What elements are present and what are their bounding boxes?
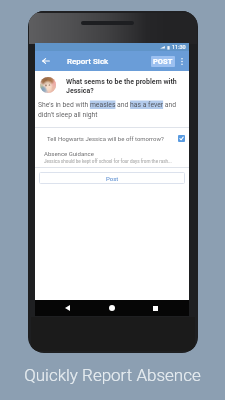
button[interactable]: Post [39, 172, 185, 184]
staticText: Tell Hogwarts Jessica will be off tomorr… [47, 135, 164, 142]
button[interactable]: POST [151, 56, 175, 67]
staticText: POST [153, 57, 173, 66]
staticText: 11:30 [172, 44, 186, 50]
button[interactable]: More options [175, 55, 188, 68]
staticText: Quickly Report Absence [24, 365, 201, 385]
button[interactable]: Back [60, 301, 74, 315]
staticText: Report Sick [67, 57, 109, 66]
button[interactable]: Home [105, 301, 119, 315]
staticText: What seems to be the problem with Jessic… [66, 78, 184, 95]
button[interactable]: Recent apps [148, 301, 162, 315]
button[interactable]: Tell Hogwarts Jessica will be off tomorr… [35, 132, 189, 145]
staticText: Absence Guidance [44, 150, 94, 157]
staticText: She's in bed with measles and has a feve… [38, 101, 181, 119]
button[interactable]: Navigate up [38, 53, 54, 69]
staticText: Post [106, 175, 119, 182]
staticText: Jessica should be kept off school for fo… [44, 159, 198, 164]
